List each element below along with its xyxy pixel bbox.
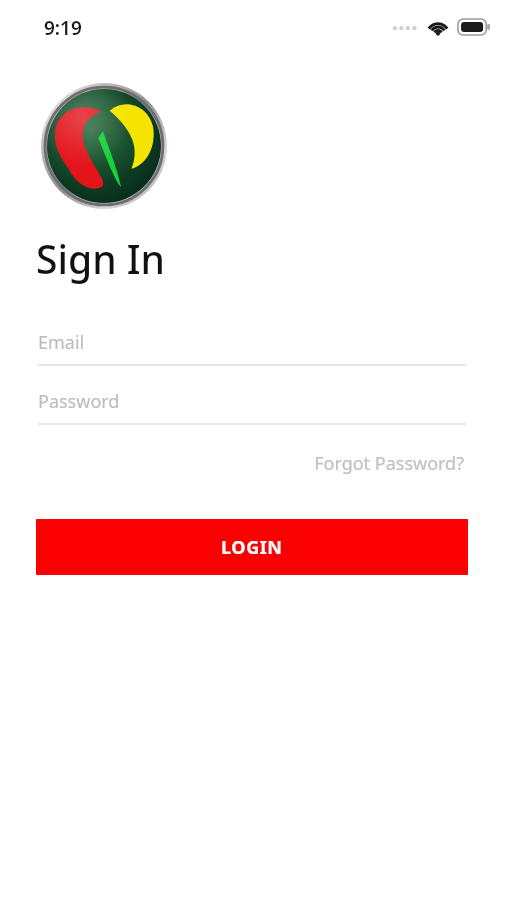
staticText: 9:19 bbox=[44, 15, 82, 41]
button[interactable]: LOGIN bbox=[36, 519, 468, 575]
button[interactable]: Email bbox=[38, 330, 466, 357]
staticText: LOGIN bbox=[221, 535, 283, 560]
button[interactable]: Forgot Password? bbox=[312, 447, 466, 480]
staticText: Email bbox=[38, 330, 85, 355]
other: App logo bbox=[41, 83, 167, 209]
staticText: Sign In bbox=[36, 232, 166, 285]
staticText: Password bbox=[38, 389, 120, 414]
staticText: Forgot Password? bbox=[314, 451, 464, 476]
button[interactable]: Password bbox=[38, 389, 466, 416]
